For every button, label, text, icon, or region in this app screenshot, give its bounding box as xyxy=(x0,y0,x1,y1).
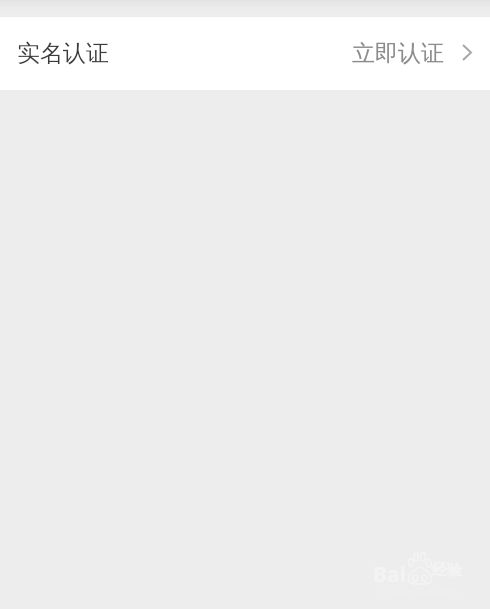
other: Go to verification xyxy=(462,44,472,61)
staticText: 实名认证 xyxy=(17,39,109,68)
button[interactable]: 实名认证 xyxy=(0,17,490,90)
button[interactable]: 立即认证 xyxy=(340,17,490,90)
staticText: 立即认证 xyxy=(352,39,444,68)
